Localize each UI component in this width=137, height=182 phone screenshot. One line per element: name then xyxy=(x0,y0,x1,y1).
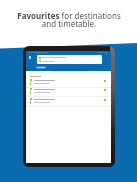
button[interactable] xyxy=(26,79,111,88)
button[interactable] xyxy=(26,88,111,97)
button[interactable] xyxy=(36,66,46,69)
button[interactable] xyxy=(37,55,102,64)
staticText: Favourites for destinations and timetabl… xyxy=(17,10,121,29)
button[interactable] xyxy=(26,98,111,107)
